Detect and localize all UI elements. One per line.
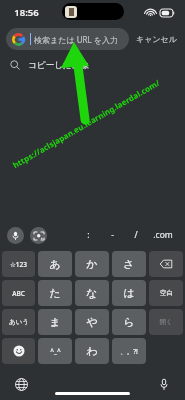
staticText: ら <box>123 315 135 329</box>
staticText: : <box>87 229 90 241</box>
staticText: / <box>134 229 138 241</box>
button[interactable]: か <box>75 251 109 277</box>
button[interactable]: キャンセル <box>134 30 179 48</box>
button[interactable]: - <box>100 224 124 246</box>
staticText: 空白 <box>160 289 173 297</box>
staticText: コピーした画像 <box>28 60 89 71</box>
button[interactable]: コピーした画像 <box>0 54 185 76</box>
button[interactable]: ABC <box>2 280 35 306</box>
staticText: た <box>49 286 61 300</box>
button[interactable]: 開く <box>149 309 183 335</box>
button[interactable]: ^_^ <box>38 338 72 364</box>
button[interactable]: Backspace <box>149 251 183 277</box>
staticText: わ <box>86 344 98 358</box>
staticText: か <box>86 257 98 271</box>
staticText: ま <box>49 315 61 329</box>
button[interactable]: ☆123 <box>2 251 35 277</box>
button[interactable]: や <box>75 309 109 335</box>
staticText: は <box>123 286 135 300</box>
staticText: 18:56 <box>14 6 39 19</box>
button[interactable]: Change keyboard <box>12 375 30 393</box>
staticText: https://aclsjapan.eu.learning.laerdal.co… <box>10 77 161 170</box>
button[interactable]: あ <box>38 251 72 277</box>
staticText: キャンセル <box>136 34 177 44</box>
button[interactable]: は <box>112 280 146 306</box>
staticText: ABC <box>12 289 25 298</box>
staticText: - <box>111 229 114 241</box>
button[interactable]: 検索または URL を入力 <box>6 28 129 50</box>
button[interactable]: Emoji <box>2 338 35 364</box>
button[interactable]: Google Lens <box>30 227 47 244</box>
staticText: あ <box>49 257 61 271</box>
button[interactable]: Voice input <box>155 375 173 393</box>
button[interactable]: / <box>124 224 148 246</box>
staticText: な <box>86 286 98 300</box>
staticText: 検索または URL を入力 <box>34 34 118 45</box>
button[interactable]: Voice search <box>7 227 24 244</box>
button[interactable]: あいう <box>2 309 35 335</box>
button[interactable]: さ <box>112 251 146 277</box>
button[interactable]: : <box>76 224 100 246</box>
button[interactable]: わ <box>75 338 109 364</box>
staticText: 、。?! <box>120 347 138 356</box>
staticText: ^_^ <box>50 347 61 356</box>
staticText: さ <box>123 257 135 271</box>
button[interactable]: .com <box>148 224 178 246</box>
staticText: .com <box>153 229 173 241</box>
staticText: や <box>86 315 98 329</box>
button[interactable]: た <box>38 280 72 306</box>
button[interactable]: な <box>75 280 109 306</box>
button[interactable]: 空白 <box>149 280 183 306</box>
staticText: あいう <box>9 318 29 326</box>
staticText: ☆123 <box>10 260 27 269</box>
button[interactable]: ま <box>38 309 72 335</box>
button[interactable]: ら <box>112 309 146 335</box>
staticText: 開く <box>159 318 173 326</box>
button[interactable]: 、。?! <box>112 338 146 364</box>
